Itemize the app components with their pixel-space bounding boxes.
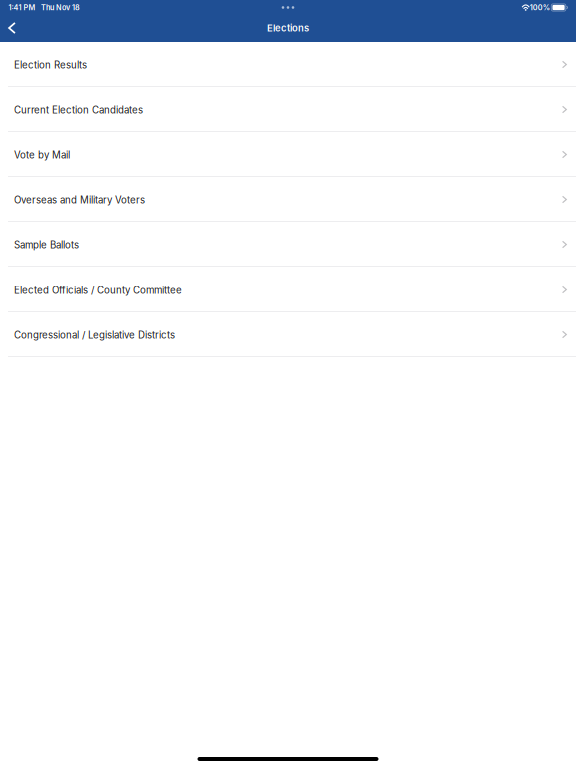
staticText: Sample Ballots (14, 239, 79, 251)
staticText: Congressional / Legislative Districts (14, 329, 175, 341)
button[interactable]: Elected Officials / County Committee (0, 267, 576, 312)
button[interactable]: Election Results (0, 42, 576, 87)
staticText: Elected Officials / County Committee (14, 284, 182, 296)
button[interactable]: Overseas and Military Voters (0, 177, 576, 222)
staticText: Election Results (14, 59, 87, 71)
button[interactable]: Vote by Mail (0, 132, 576, 177)
staticText: Vote by Mail (14, 149, 70, 161)
button[interactable]: Congressional / Legislative Districts (0, 312, 576, 357)
staticText: 1:41 PM (8, 3, 35, 12)
staticText: 100% (530, 3, 550, 12)
button[interactable]: Sample Ballots (0, 222, 576, 267)
staticText: Overseas and Military Voters (14, 194, 145, 206)
staticText: Elections (267, 22, 309, 34)
staticText: Thu Nov 18 (41, 3, 80, 12)
button[interactable]: Current Election Candidates (0, 87, 576, 132)
button[interactable]: Back (0, 16, 24, 40)
staticText: Current Election Candidates (14, 104, 143, 116)
